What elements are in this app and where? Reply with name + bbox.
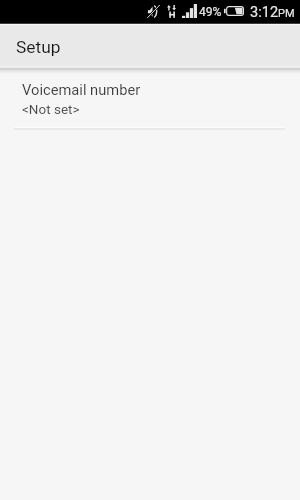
staticText: PM bbox=[278, 7, 295, 20]
other: Signal strength bbox=[182, 4, 197, 18]
other: Sound off bbox=[147, 5, 160, 18]
staticText: 3:12 bbox=[250, 3, 279, 20]
staticText: <Not set> bbox=[22, 101, 80, 117]
staticText: 49% bbox=[199, 5, 222, 19]
other: Battery 49 percent bbox=[224, 6, 244, 16]
button[interactable]: Voicemail number bbox=[0, 71, 300, 129]
other: HSPA data bbox=[167, 5, 176, 18]
staticText: Voicemail number bbox=[22, 81, 141, 98]
staticText: Setup bbox=[16, 37, 61, 57]
